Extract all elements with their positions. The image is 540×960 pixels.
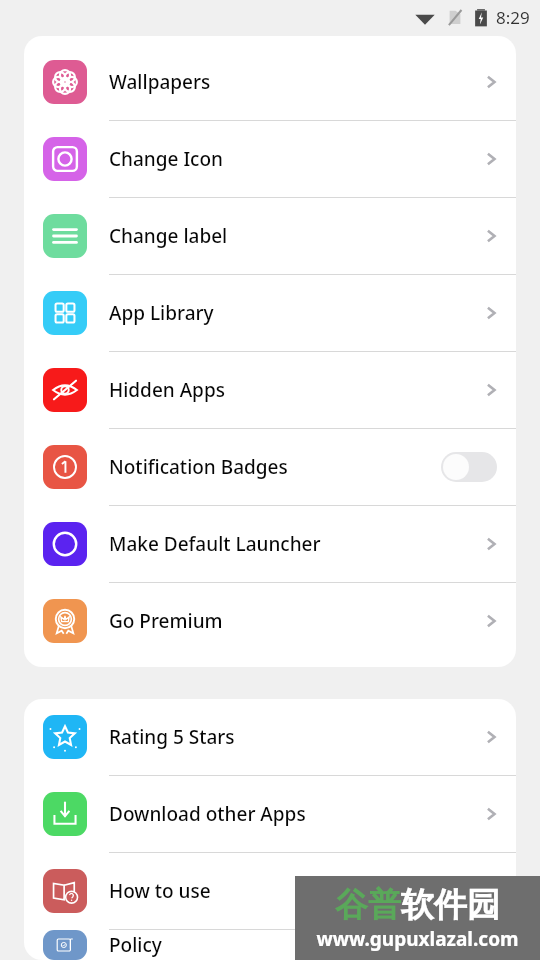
staticText: 8:29 [496,6,530,29]
staticText: Hidden Apps [109,377,480,403]
staticText: Make Default Launcher [109,531,480,557]
button[interactable]: Rating 5 Stars [24,699,516,775]
button[interactable]: How to use [24,853,516,929]
staticText: Wallpapers [109,69,480,95]
staticText: 谷普 [335,884,401,926]
button[interactable]: Hidden Apps [24,352,516,428]
staticText: 软件园 [401,884,500,926]
button[interactable]: Change Icon [24,121,516,197]
staticText: Policy [109,932,480,958]
staticText: App Library [109,300,480,326]
button[interactable]: Notification Badges [24,429,516,505]
staticText: Go Premium [109,608,480,634]
button[interactable]: Wallpapers [24,44,516,120]
staticText: How to use [109,878,480,904]
staticText: Notification Badges [109,454,441,480]
staticText: www.gupuxlazal.com [316,926,519,952]
staticText: Download other Apps [109,801,480,827]
button[interactable]: Change label [24,198,516,274]
staticText: Change Icon [109,146,480,172]
button[interactable]: App Library [24,275,516,351]
staticText: Change label [109,223,480,249]
button[interactable]: Toggle Notification Badges [441,452,497,482]
button[interactable]: Policy [24,930,516,960]
button[interactable]: Download other Apps [24,776,516,852]
button[interactable]: Make Default Launcher [24,506,516,582]
staticText: Rating 5 Stars [109,724,480,750]
button[interactable]: Go Premium [24,583,516,659]
